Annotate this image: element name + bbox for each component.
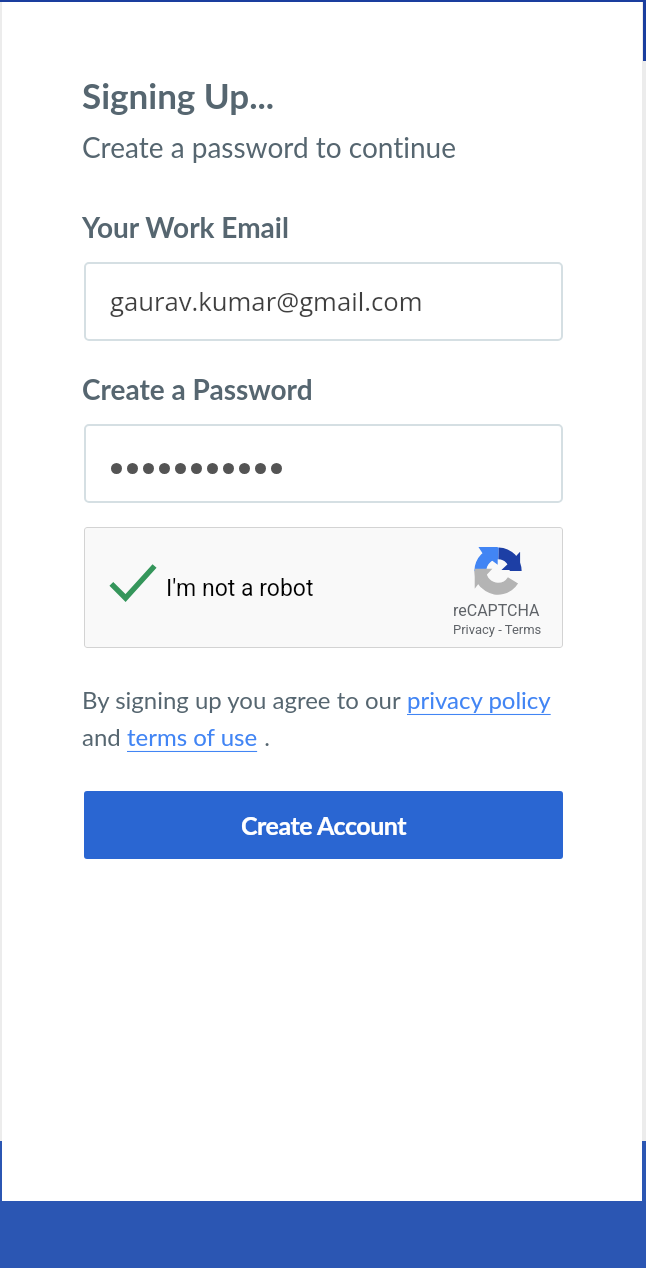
staticText: gaurav.kumar@gmail.com	[110, 284, 423, 319]
button[interactable]: Create Account	[84, 791, 563, 859]
staticText: Privacy - Terms	[453, 622, 542, 637]
staticText: By signing up you agree to our	[82, 685, 407, 714]
staticText: and	[82, 722, 127, 751]
button[interactable]	[84, 424, 563, 503]
button[interactable]: terms of use	[127, 722, 258, 751]
button[interactable]: privacy policy	[407, 685, 551, 714]
staticText: Create Account	[241, 810, 407, 840]
button[interactable]: I'm not a robot checkbox	[84, 527, 563, 648]
staticText: I'm not a robot	[166, 575, 314, 602]
staticText: Create a Password	[82, 372, 313, 406]
button[interactable]: gaurav.kumar@gmail.com	[84, 262, 563, 341]
staticText: Your Work Email	[82, 210, 289, 244]
staticText: Signing Up...	[82, 74, 275, 116]
staticText: Create a password to continue	[82, 130, 456, 164]
staticText: .	[258, 722, 270, 751]
staticText: reCAPTCHA	[453, 601, 540, 620]
other: I'm not a robot checkbox	[110, 565, 155, 598]
